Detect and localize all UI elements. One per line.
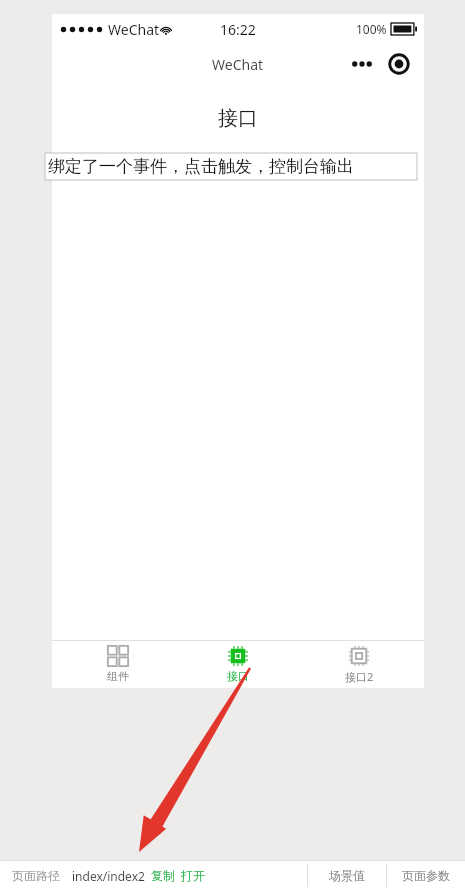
staticText: 绑定了一个事件，点击触发，控制台输出: [48, 156, 354, 177]
staticText: 组件: [107, 669, 129, 683]
button[interactable]: 复制: [151, 868, 175, 883]
button[interactable]: 接口2: [304, 640, 414, 688]
staticText: 100%: [356, 21, 387, 37]
staticText: 页面路径: [12, 868, 60, 883]
button[interactable]: Close: [386, 51, 412, 77]
button[interactable]: 接口: [183, 640, 293, 688]
button[interactable]: 打开: [181, 868, 205, 883]
staticText: 接口: [227, 669, 249, 683]
button[interactable]: 绑定了一个事件，点击触发，控制台输出: [45, 153, 417, 180]
staticText: 打开: [181, 868, 205, 883]
staticText: 16:22: [220, 20, 256, 39]
staticText: WeChat: [108, 20, 160, 39]
staticText: 接口2: [345, 669, 374, 684]
staticText: 接口: [52, 106, 424, 131]
staticText: 页面参数: [402, 868, 450, 883]
button[interactable]: 组件: [63, 640, 173, 688]
staticText: WeChat: [212, 55, 264, 74]
button[interactable]: 页面参数: [387, 860, 465, 891]
staticText: 复制: [151, 868, 175, 883]
staticText: index/index2: [72, 868, 145, 884]
button[interactable]: 场景值: [308, 860, 386, 891]
staticText: 场景值: [329, 868, 365, 883]
button[interactable]: More: [346, 53, 378, 75]
